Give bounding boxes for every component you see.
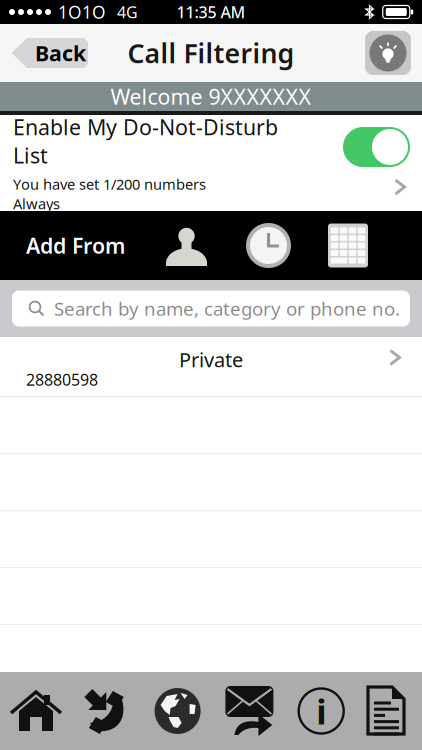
staticText: i xyxy=(316,688,326,734)
staticText: List xyxy=(13,141,48,169)
button[interactable]: Messages xyxy=(222,686,276,736)
staticText: Call Filtering xyxy=(127,35,294,71)
button[interactable]: Tips xyxy=(365,31,411,75)
staticText: Welcome 9XXXXXXX xyxy=(110,82,311,111)
button[interactable]: Calls xyxy=(83,686,133,736)
button[interactable]: Add from recent calls xyxy=(246,223,291,268)
staticText: 1O1O xyxy=(58,0,106,23)
button[interactable]: Add from keypad xyxy=(328,223,368,267)
button[interactable]: Back xyxy=(9,36,93,70)
button[interactable]: Home xyxy=(10,687,62,735)
staticText: Search by name, category or phone no. xyxy=(54,296,400,321)
staticText: 4G xyxy=(117,1,138,23)
button[interactable]: Documents xyxy=(366,686,408,736)
staticText: Back xyxy=(35,39,86,67)
staticText: 28880598 xyxy=(26,369,98,390)
staticText: 11:35 AM xyxy=(176,1,245,23)
staticText: Private xyxy=(179,346,243,373)
staticText: You have set 1/200 numbers xyxy=(13,174,206,194)
button[interactable]: Search by name, category or phone no. xyxy=(12,290,410,326)
button[interactable]: Info xyxy=(297,687,345,735)
button[interactable]: Add from contacts xyxy=(164,223,209,268)
button[interactable]: Browser xyxy=(154,687,202,735)
staticText: Add From xyxy=(26,231,125,260)
button[interactable]: 28880598 xyxy=(0,337,422,396)
staticText: Always xyxy=(13,194,60,213)
staticText: Enable My Do-Not-Disturb xyxy=(13,113,278,141)
button[interactable]: Enable My Do-Not-Disturb xyxy=(0,115,422,211)
